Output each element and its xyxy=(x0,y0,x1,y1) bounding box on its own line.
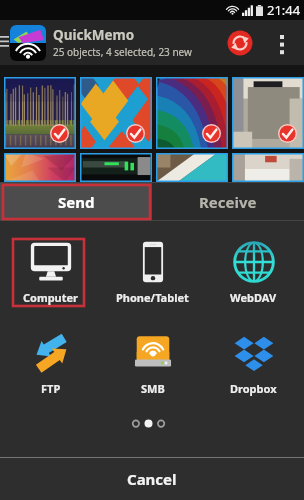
staticText: Computer xyxy=(23,290,79,305)
staticText: 21:44 xyxy=(267,1,301,19)
staticText: QuickMemo xyxy=(53,26,135,44)
button[interactable]: Photo 8 xyxy=(232,153,304,182)
button[interactable]: Cancel xyxy=(0,458,304,500)
button[interactable]: Photo 6 xyxy=(80,153,152,182)
button[interactable]: Photo 7 xyxy=(156,153,228,182)
button[interactable]: Computer xyxy=(0,221,102,311)
staticText: 25 objects, 4 selected, 23 new xyxy=(53,45,192,59)
button[interactable]: Phone/Tablet xyxy=(102,221,203,311)
staticText: WebDAV xyxy=(230,290,277,305)
button[interactable]: Photo 3 xyxy=(156,77,228,149)
staticText: Receive xyxy=(199,192,257,212)
button[interactable]: Photo 4 xyxy=(232,77,304,149)
button[interactable]: Refresh xyxy=(221,20,259,65)
staticText: Cancel xyxy=(127,469,177,489)
button[interactable]: WebDAV xyxy=(203,221,304,311)
button[interactable]: Photo 5 xyxy=(4,153,76,182)
staticText: Phone/Tablet xyxy=(116,290,189,305)
staticText: FTP xyxy=(41,381,61,396)
button[interactable]: Photo 1 xyxy=(4,77,76,149)
button[interactable]: FTP xyxy=(0,311,102,401)
button[interactable]: SMB xyxy=(102,311,203,401)
button[interactable]: Navigate up xyxy=(0,20,10,65)
staticText: Dropbox xyxy=(230,381,277,396)
button[interactable]: Photo 2 xyxy=(80,77,152,149)
button[interactable]: Receive xyxy=(152,182,304,221)
button[interactable]: More options xyxy=(259,20,304,65)
button[interactable]: Dropbox xyxy=(203,311,304,401)
staticText: SMB xyxy=(141,381,165,396)
staticText: Send xyxy=(58,192,95,212)
button[interactable]: Send xyxy=(0,182,152,221)
